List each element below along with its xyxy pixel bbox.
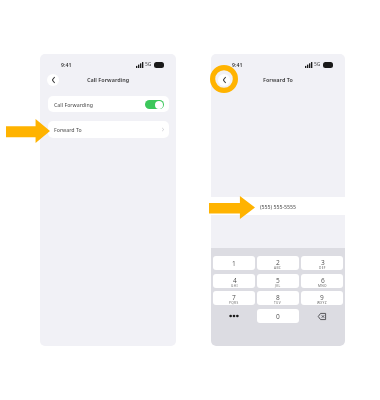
- button[interactable]: 9: [301, 291, 343, 305]
- staticText: JKL: [275, 284, 281, 288]
- staticText: GHI: [231, 284, 238, 288]
- staticText: 0: [276, 312, 280, 321]
- button[interactable]: (555) 555-5555: [211, 197, 345, 215]
- staticText: 9:41: [61, 61, 72, 68]
- button[interactable]: Call Forwarding: [48, 96, 169, 112]
- staticText: Forward To: [263, 76, 293, 83]
- staticText: 1: [232, 259, 236, 268]
- staticText: 9: [320, 293, 324, 302]
- staticText: WXYZ: [317, 301, 327, 305]
- button[interactable]: 6: [301, 274, 343, 288]
- staticText: 2: [276, 258, 280, 267]
- button[interactable]: Back: [47, 74, 59, 86]
- staticText: Call Forwarding: [87, 76, 130, 83]
- staticText: Forward To: [54, 126, 82, 133]
- staticText: 5G: [145, 61, 152, 68]
- button[interactable]: 7: [213, 291, 255, 305]
- button[interactable]: Forward To: [48, 121, 169, 138]
- button[interactable]: 1: [213, 256, 255, 270]
- staticText: 6: [321, 276, 325, 285]
- staticText: 9:41: [232, 61, 243, 68]
- staticText: 3: [321, 258, 325, 267]
- button[interactable]: 2: [257, 256, 299, 270]
- button[interactable]: 4: [213, 274, 255, 288]
- staticText: TUV: [274, 301, 282, 305]
- staticText: 4: [233, 276, 237, 285]
- staticText: PQRS: [229, 301, 239, 305]
- staticText: ABC: [274, 266, 282, 270]
- button[interactable]: 0: [257, 309, 299, 323]
- staticText: 8: [276, 293, 280, 302]
- staticText: MNO: [318, 284, 327, 288]
- button[interactable]: 3: [301, 256, 343, 270]
- button[interactable]: 8: [257, 291, 299, 305]
- staticText: 5: [276, 276, 280, 285]
- button[interactable]: [213, 309, 255, 323]
- button[interactable]: Delete: [301, 309, 343, 323]
- staticText: Call Forwarding: [54, 101, 93, 108]
- staticText: DEF: [319, 266, 326, 270]
- button[interactable]: Back: [218, 74, 230, 86]
- staticText: (555) 555-5555: [260, 203, 296, 210]
- staticText: 7: [232, 293, 236, 302]
- staticText: 5G: [314, 61, 321, 68]
- button[interactable]: 5: [257, 274, 299, 288]
